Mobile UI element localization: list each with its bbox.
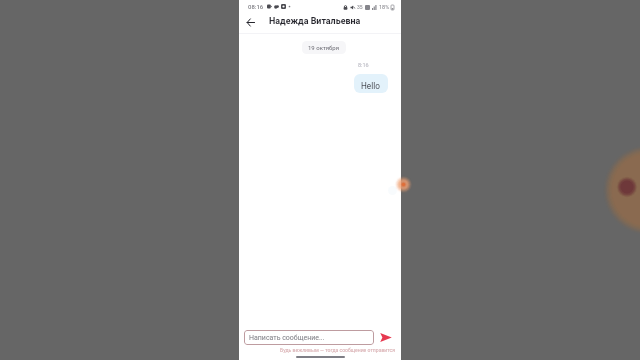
button[interactable]: Send message	[378, 330, 394, 345]
staticText: Будь вежливым — тогда сообщение отправит…	[239, 347, 395, 353]
button[interactable]: Hello	[354, 74, 388, 93]
staticText: 08:16	[248, 3, 264, 10]
staticText: Hello	[361, 81, 380, 91]
staticText: 8:16	[358, 62, 369, 68]
button[interactable]: Написать сообщение...	[244, 330, 374, 345]
button[interactable]: Back	[240, 12, 260, 32]
staticText: 35	[357, 4, 363, 10]
staticText: 19 октября	[308, 44, 340, 51]
staticText: 18%	[379, 4, 390, 10]
staticText: Написать сообщение...	[249, 334, 325, 342]
staticText: Надежда Витальевна	[269, 16, 361, 26]
